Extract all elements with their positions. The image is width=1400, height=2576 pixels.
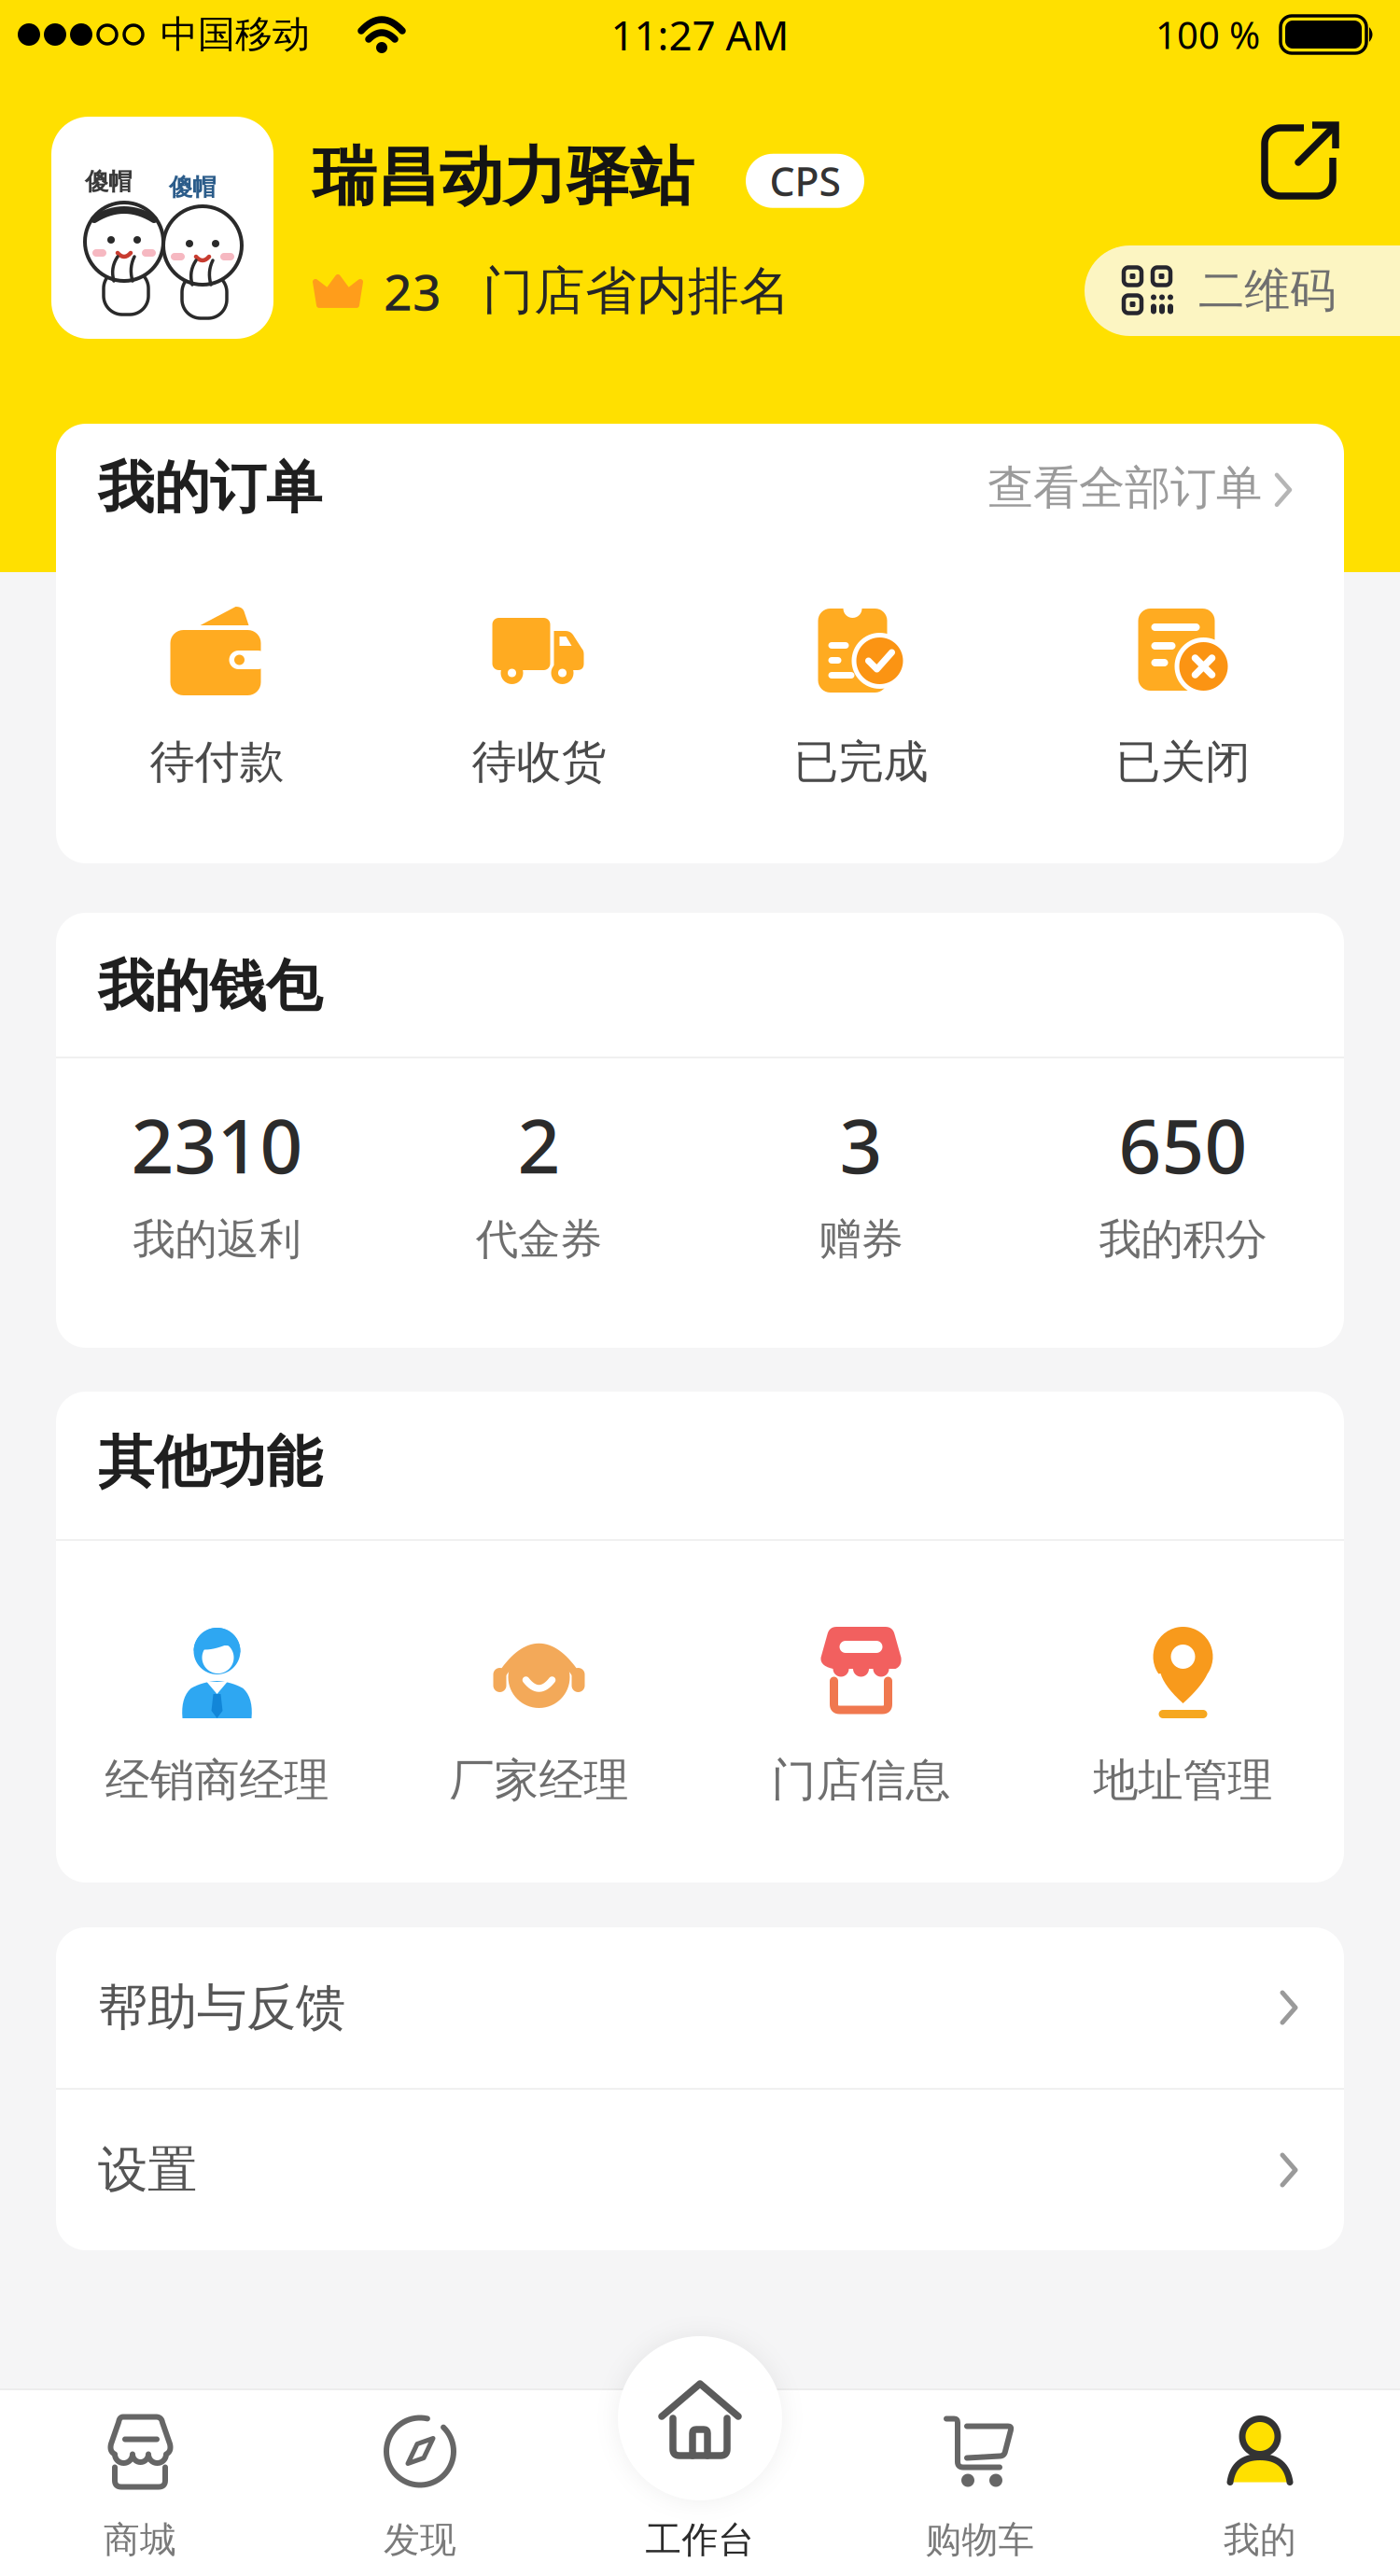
staticText: 帮助与反馈 <box>98 1977 345 2038</box>
button[interactable]: Store avatar <box>51 117 273 339</box>
button[interactable]: 待收货 <box>378 603 700 790</box>
button[interactable]: 2 <box>378 1095 700 1265</box>
button[interactable]: 购物车 <box>840 2413 1120 2576</box>
button[interactable]: 商城 <box>0 2413 280 2576</box>
staticText: 已完成 <box>794 735 928 790</box>
button[interactable]: 门店信息 <box>700 1625 1022 1808</box>
staticText: 门店省内排名 <box>483 260 791 322</box>
button[interactable]: 查看全部订单 <box>987 460 1290 516</box>
staticText: 傻帽 <box>85 167 132 196</box>
button[interactable]: 经销商经理 <box>56 1625 378 1808</box>
staticText: 我的 <box>1224 2518 1296 2562</box>
staticText: 我的返利 <box>133 1213 301 1265</box>
staticText: 赠券 <box>819 1213 903 1265</box>
staticText: 11:27 AM <box>611 7 789 62</box>
staticText: 待收货 <box>472 735 606 790</box>
button[interactable]: 地址管理 <box>1022 1625 1344 1808</box>
button[interactable]: 二维码 <box>1085 245 1400 336</box>
staticText: 设置 <box>98 2139 197 2201</box>
staticText: 已关闭 <box>1116 735 1250 790</box>
staticText: 代金券 <box>476 1213 602 1265</box>
staticText: 商城 <box>104 2518 176 2562</box>
button[interactable]: 待付款 <box>56 603 378 790</box>
staticText: 厂家经理 <box>449 1753 629 1808</box>
staticText: 工作台 <box>645 2518 755 2562</box>
staticText: 我的钱包 <box>98 952 322 1021</box>
staticText: CPS <box>770 154 840 207</box>
staticText: 待付款 <box>150 735 284 790</box>
staticText: 门店信息 <box>771 1753 951 1808</box>
button[interactable]: 3 <box>700 1095 1022 1265</box>
button[interactable]: 厂家经理 <box>378 1625 700 1808</box>
staticText: 23 <box>384 258 441 324</box>
staticText: 查看全部订单 <box>987 460 1262 516</box>
button[interactable]: 帮助与反馈 <box>56 1927 1344 2088</box>
staticText: 我的订单 <box>98 454 322 522</box>
button[interactable]: 2310 <box>56 1095 378 1265</box>
button[interactable]: 设置 <box>56 2090 1344 2250</box>
button[interactable]: 我的 <box>1120 2413 1400 2576</box>
button[interactable]: 650 <box>1022 1095 1344 1265</box>
button[interactable]: 已完成 <box>700 603 1022 790</box>
staticText: 中国移动 <box>161 12 310 57</box>
staticText: 100 % <box>1155 10 1260 59</box>
staticText: 其他功能 <box>98 1428 322 1497</box>
staticText: 3 <box>840 1095 882 1194</box>
staticText: 购物车 <box>925 2518 1035 2562</box>
staticText: 傻帽 <box>169 173 216 202</box>
button[interactable]: 工作台 <box>560 2413 840 2576</box>
staticText: 2310 <box>131 1095 303 1194</box>
staticText: 发现 <box>384 2518 456 2562</box>
button[interactable]: 发现 <box>280 2413 560 2576</box>
button[interactable]: 工作台 <box>618 2336 782 2500</box>
staticText: 2 <box>518 1095 560 1194</box>
button[interactable]: 已关闭 <box>1022 603 1344 790</box>
button[interactable]: Share <box>1265 120 1340 196</box>
staticText: 经销商经理 <box>105 1753 329 1808</box>
staticText: 650 <box>1119 1095 1247 1194</box>
staticText: 我的积分 <box>1099 1213 1267 1265</box>
staticText: 瑞昌动力驿站 <box>313 138 693 216</box>
staticText: 地址管理 <box>1093 1753 1273 1808</box>
staticText: 二维码 <box>1198 262 1336 319</box>
